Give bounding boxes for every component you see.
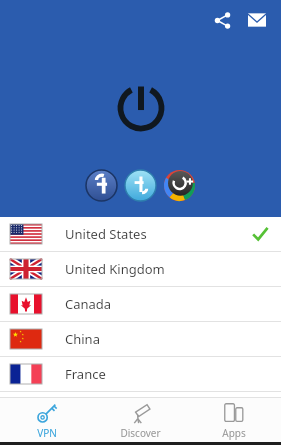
button[interactable]: Canada [0, 287, 281, 322]
button[interactable]: Connect VPN [109, 73, 173, 137]
button[interactable]: United States [0, 217, 281, 252]
button[interactable]: France [0, 357, 281, 392]
staticText: United Kingdom [65, 260, 165, 278]
staticText: United States [65, 225, 147, 243]
staticText: VPN [37, 426, 57, 440]
button[interactable]: Email [244, 7, 270, 33]
staticText: China [65, 330, 100, 348]
button[interactable]: Discover [93, 397, 187, 445]
button[interactable]: China [0, 322, 281, 357]
staticText: Apps [222, 426, 246, 440]
button[interactable]: Share [209, 7, 235, 33]
button[interactable]: Twitter [124, 169, 157, 202]
staticText: Discover [120, 426, 161, 440]
button[interactable]: VPN [0, 397, 93, 445]
staticText: Canada [65, 295, 112, 313]
button[interactable]: Google Plus [163, 169, 196, 202]
button[interactable]: Facebook [85, 169, 118, 202]
button[interactable]: Apps [187, 397, 281, 445]
staticText: France [65, 365, 106, 383]
button[interactable]: United Kingdom [0, 252, 281, 287]
